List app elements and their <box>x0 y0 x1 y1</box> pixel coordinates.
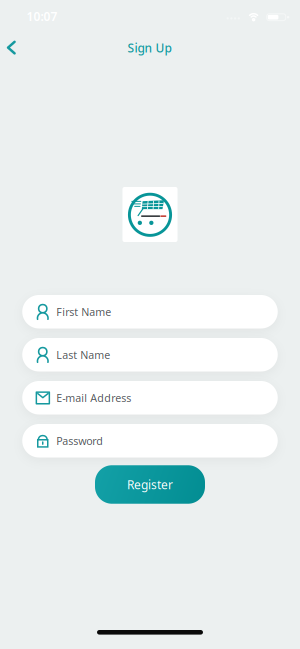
button[interactable]: Register <box>95 465 205 504</box>
staticText: Password <box>56 434 103 448</box>
staticText: Register <box>127 476 173 492</box>
button[interactable]: Password <box>22 424 278 457</box>
staticText: Last Name <box>56 348 110 362</box>
button[interactable] <box>0 32 25 63</box>
staticText: Sign Up <box>127 40 171 56</box>
button[interactable]: First Name <box>22 295 278 328</box>
button[interactable]: Last Name <box>22 338 278 371</box>
staticText: First Name <box>56 305 111 319</box>
staticText: 10:07 <box>26 8 57 24</box>
button[interactable]: E-mail Address <box>22 381 278 414</box>
staticText: E-mail Address <box>56 391 131 405</box>
